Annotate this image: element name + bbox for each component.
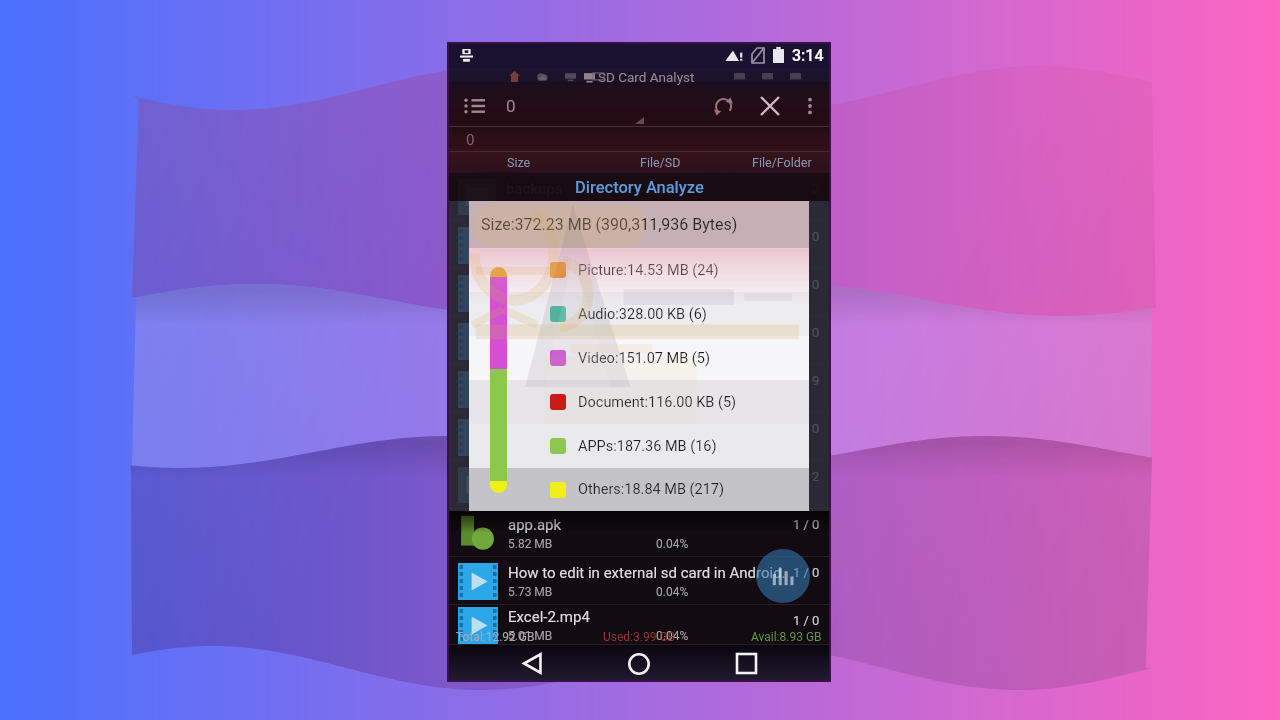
staticText: Avail:8.93 GB xyxy=(751,630,822,644)
staticText: 4.82 MB xyxy=(506,201,551,215)
staticText: 0.04% xyxy=(656,585,689,599)
staticText: SD Card Analyst xyxy=(598,69,695,85)
staticText: Total:12.92 GB xyxy=(456,630,535,644)
staticText: Screen record.mp4 xyxy=(508,372,635,390)
staticText: Size xyxy=(507,155,531,170)
staticText: Excel-2.mp4 xyxy=(508,608,590,626)
staticText: 1 / 0 xyxy=(793,565,820,580)
staticText: 5.73 MB xyxy=(508,585,553,599)
staticText: 2 xyxy=(812,469,820,484)
button[interactable]: Audio:328.00 KB (6) xyxy=(469,292,809,336)
button[interactable]: More options xyxy=(800,96,820,116)
staticText: 0 xyxy=(466,131,475,149)
staticText: Android tips.mp4 xyxy=(508,228,623,246)
staticText: 3.20 MB xyxy=(506,489,551,503)
staticText: Picture:14.53 MB (24) xyxy=(578,262,719,279)
button[interactable]: List options xyxy=(464,95,486,117)
staticText: 5.01 MB xyxy=(508,629,553,643)
button[interactable]: How to edit in external sd card in Andro… xyxy=(447,557,831,605)
staticText: Video:151.07 MB (5) xyxy=(578,350,711,367)
staticText: Size:372.23 MB (390,311,936 Bytes) xyxy=(481,215,738,234)
staticText: 0.04% xyxy=(656,629,689,643)
button[interactable]: Analyze storage xyxy=(756,549,810,603)
button[interactable]: APPs:187.36 MB (16) xyxy=(469,424,809,468)
staticText: Others:18.84 MB (217) xyxy=(578,481,725,498)
button[interactable]: Refresh xyxy=(710,93,736,119)
button[interactable]: backups xyxy=(447,173,831,221)
staticText: 0.02% xyxy=(655,489,688,503)
button[interactable]: Document:116.00 KB (5) xyxy=(469,380,809,424)
button[interactable]: Video:151.07 MB (5) xyxy=(469,336,809,380)
staticText: 0.09% xyxy=(656,345,689,359)
staticText: app.apk xyxy=(508,516,562,534)
button[interactable]: Home xyxy=(617,645,661,682)
staticText: 1 / 0 xyxy=(793,517,820,532)
staticText: 22.4 MB xyxy=(508,297,553,311)
staticText: 3:14 xyxy=(792,46,824,65)
staticText: backups xyxy=(506,180,563,198)
button[interactable]: Picture:14.53 MB (24) xyxy=(469,248,809,292)
staticText: File/Folder xyxy=(752,155,812,170)
staticText: Audio:328.00 KB (6) xyxy=(578,306,707,323)
staticText: 0.24% xyxy=(656,393,689,407)
staticText: 31.5 MB xyxy=(508,393,553,407)
staticText: File/SD xyxy=(640,155,681,170)
button[interactable]: Recents xyxy=(724,645,768,682)
button[interactable]: Android tips.mp4 xyxy=(447,221,831,269)
staticText: Slides.pptx xyxy=(506,468,580,486)
button[interactable]: Close xyxy=(757,93,783,119)
staticText: Directory Analyze xyxy=(575,178,704,197)
staticText: 18.2 MB xyxy=(508,249,553,263)
staticText: Clip-1.mp4 xyxy=(508,324,581,342)
button[interactable]: Samsung demo.mp4 xyxy=(447,269,831,317)
staticText: 9.70 MB xyxy=(508,441,553,455)
staticText: Used:3.99 GB xyxy=(603,630,676,644)
button[interactable]: Screen record.mp4 xyxy=(447,365,831,413)
button[interactable]: Excel-2.mp4 xyxy=(447,605,831,645)
staticText: 0.04% xyxy=(656,537,689,551)
staticText: 12.1 MB xyxy=(508,345,553,359)
staticText: 0.07% xyxy=(656,441,689,455)
staticText: Samsung demo.mp4 xyxy=(508,276,647,294)
button[interactable]: Back xyxy=(510,645,554,682)
button[interactable]: Tutorial.mp4 xyxy=(447,413,831,461)
staticText: Document:116.00 KB (5) xyxy=(578,394,737,411)
button[interactable]: Clip-1.mp4 xyxy=(447,317,831,365)
staticText: 1 / 0 xyxy=(793,613,820,628)
staticText: 0 xyxy=(812,229,820,244)
button[interactable]: Others:18.84 MB (217) xyxy=(469,468,809,511)
button[interactable]: Slides.pptx xyxy=(447,461,831,509)
staticText: 0.13% xyxy=(656,249,689,263)
staticText: How to edit in external sd card in Andro… xyxy=(508,564,786,582)
staticText: APPs:187.36 MB (16) xyxy=(578,438,717,455)
staticText: 0 xyxy=(812,325,820,340)
staticText: 9 xyxy=(812,373,820,388)
button[interactable]: app.apk xyxy=(447,509,831,557)
staticText: 5.82 MB xyxy=(508,537,553,551)
staticText: 0 xyxy=(812,421,820,436)
staticText: Tutorial.mp4 xyxy=(508,420,593,438)
staticText: 0 xyxy=(506,96,516,116)
staticText: 0.16% xyxy=(656,297,689,311)
staticText: 0 xyxy=(812,277,820,292)
